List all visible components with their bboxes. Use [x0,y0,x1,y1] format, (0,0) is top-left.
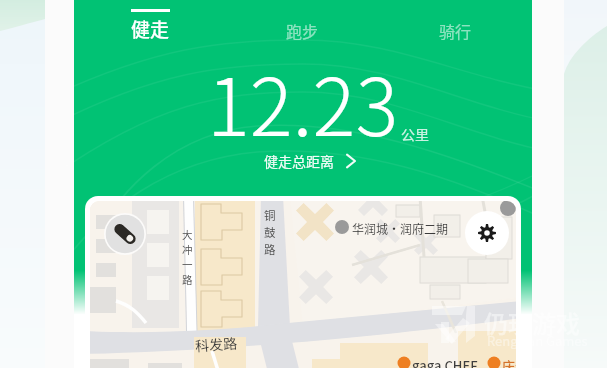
staticText: 大 [182,227,193,242]
button[interactable]: 骑行 [379,0,532,48]
staticText: 一 [182,257,193,272]
staticText: 路 [182,272,193,287]
staticText: 公里 [401,124,429,144]
button[interactable]: 健走 [74,0,226,48]
button[interactable]: 健走总距离 [80,149,538,173]
staticText: 健走总距离 [264,151,334,171]
staticText: 仍玩游戏 [484,305,580,340]
button[interactable]: My location [104,213,146,255]
staticText: Rengwan Games [487,331,588,350]
button[interactable]: Settings [465,211,509,255]
staticText: 华润城·润府二期 [352,220,449,237]
button[interactable]: 跑步 [226,0,379,48]
staticText: 跑步 [286,19,319,42]
staticText: 鼓 [264,224,276,241]
staticText: 12.23 [207,43,399,159]
staticText: 庆春 [502,356,516,368]
staticText: 健走 [131,15,170,43]
staticText: 科发路 [194,333,238,355]
staticText: gaga CHEF [412,356,478,368]
staticText: 路 [264,241,276,258]
staticText: 骑行 [439,19,472,42]
staticText: 冲 [182,242,193,257]
staticText: 铜 [264,207,276,224]
